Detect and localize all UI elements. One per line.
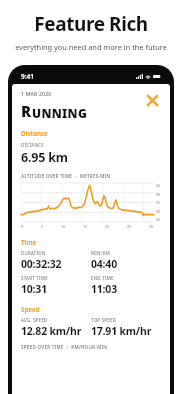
staticText: 30 — [149, 224, 154, 229]
staticText: 17.91 km/hr — [91, 324, 152, 338]
staticText: SPEED OVER TIME - KM/HOUR-MIN — [21, 344, 108, 350]
staticText: 11:03 — [91, 282, 117, 296]
staticText: TOP SPEED — [91, 317, 117, 323]
staticText: 60 — [156, 192, 161, 197]
staticText: Distance — [21, 129, 48, 137]
staticText: UNNING — [32, 105, 88, 121]
staticText: 0 — [21, 224, 24, 229]
staticText: R — [21, 101, 32, 121]
staticText: Feature Rich — [34, 11, 148, 37]
staticText: 45 — [156, 217, 161, 222]
staticText: END TIME — [91, 275, 114, 281]
staticText: 04:40 — [91, 257, 117, 271]
staticText: 10 — [61, 224, 66, 229]
staticText: 00:32:32 — [21, 257, 62, 271]
staticText: 10:31 — [21, 282, 47, 296]
staticText: DISTANCE — [21, 142, 44, 148]
staticText: 1 MAR 2020 — [21, 91, 52, 98]
staticText: START TIME — [21, 275, 48, 281]
button[interactable]: Close — [143, 91, 161, 109]
staticText: 50 — [156, 209, 161, 214]
staticText: 12.82 km/hr — [21, 324, 82, 338]
staticText: AVG. SPEED — [21, 317, 48, 323]
staticText: 20 — [105, 224, 110, 229]
staticText: 9:41 — [21, 72, 34, 81]
staticText: 65 — [156, 183, 161, 188]
staticText: everything you need and more in the futu… — [15, 42, 167, 52]
staticText: 55 — [156, 200, 161, 205]
staticText: DURATION — [21, 250, 46, 256]
staticText: 5 — [41, 224, 44, 229]
staticText: MIN/KM — [91, 250, 110, 256]
staticText: 6.95 km — [21, 149, 68, 166]
staticText: ALTITUDE OVER TIME - METRES-MIN — [21, 173, 111, 179]
staticText: Speed — [21, 305, 40, 313]
staticText: 15 — [83, 224, 88, 229]
staticText: 25 — [127, 224, 132, 229]
staticText: Time — [21, 238, 37, 246]
